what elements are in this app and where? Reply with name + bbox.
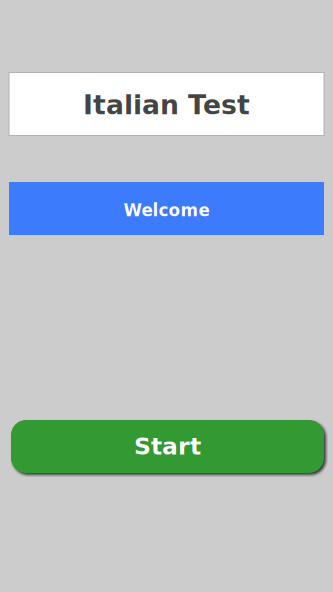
staticText: Italian Test: [83, 89, 250, 120]
button[interactable]: Start: [11, 420, 324, 473]
staticText: Welcome: [123, 201, 209, 220]
staticText: Start: [134, 433, 201, 460]
